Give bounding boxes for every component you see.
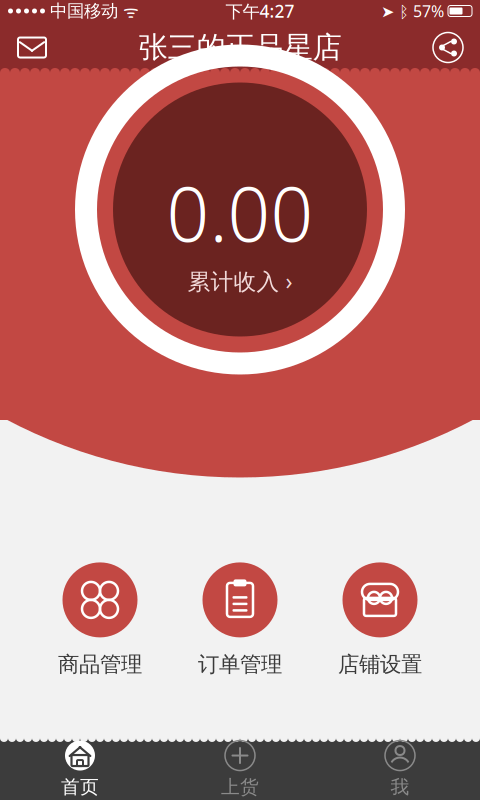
staticText: 商品管理 [58, 651, 142, 678]
button[interactable]: 店铺设置 [310, 560, 450, 680]
staticText: 中国移动 [45, 0, 118, 22]
button[interactable]: Share [422, 22, 474, 72]
staticText: 累计收入 › [187, 266, 292, 296]
button[interactable]: Messages [6, 22, 58, 72]
button[interactable]: 0.00 [75, 44, 405, 374]
staticText: 张三的正品星店 [138, 29, 341, 65]
button[interactable]: 首页 [0, 740, 160, 798]
staticText: 0.00 [166, 163, 313, 262]
staticText: 我 [390, 775, 409, 798]
button[interactable]: 我 [320, 740, 480, 798]
staticText: 上货 [221, 775, 259, 798]
staticText: ᯤ [118, 0, 139, 22]
staticText: 订单管理 [198, 651, 282, 678]
staticText: 首页 [61, 775, 99, 798]
staticText: 店铺设置 [338, 651, 422, 678]
button[interactable]: 上货 [160, 740, 320, 798]
button[interactable]: 商品管理 [30, 560, 170, 680]
staticText: 下午4:27 [225, 0, 294, 22]
staticText: ➤ ᛒ 57% [381, 0, 444, 22]
button[interactable]: 订单管理 [170, 560, 310, 680]
